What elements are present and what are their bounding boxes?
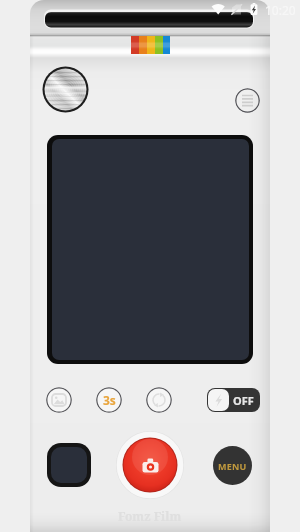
staticText: 3s xyxy=(103,392,116,408)
button[interactable]: Shutter xyxy=(116,431,184,499)
button[interactable]: Menu xyxy=(235,88,260,113)
button[interactable]: Last photo xyxy=(47,443,91,487)
button[interactable] xyxy=(47,135,253,364)
staticText: Fomz Film xyxy=(118,508,182,524)
button[interactable]: Switch camera xyxy=(146,387,172,413)
button[interactable]: Timer xyxy=(96,387,122,413)
staticText: MENU xyxy=(218,460,247,472)
button[interactable]: OFF xyxy=(207,388,260,412)
staticText: OFF xyxy=(233,393,254,408)
button[interactable]: MENU xyxy=(213,446,252,485)
button[interactable]: Flash xyxy=(42,66,89,113)
staticText: 10:20 xyxy=(265,2,296,18)
button[interactable]: Gallery xyxy=(46,387,72,413)
